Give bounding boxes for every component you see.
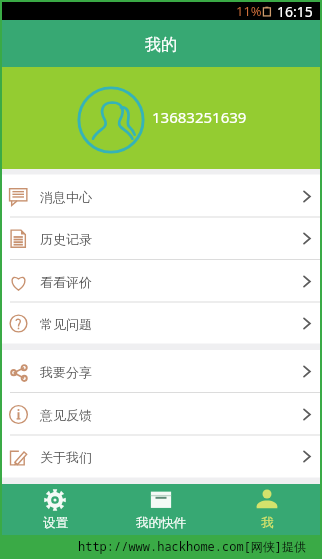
button[interactable]: 关于我们 (2, 435, 320, 478)
button[interactable]: 设置 (2, 484, 108, 535)
button[interactable]: 我的快件 (108, 484, 214, 535)
staticText: 意见反馈 (40, 407, 92, 423)
button[interactable]: 常见问题 (2, 302, 320, 345)
staticText: 13683251639 (152, 107, 247, 127)
button[interactable]: 我 (214, 484, 320, 535)
staticText: 消息中心 (40, 189, 92, 205)
staticText: 关于我们 (40, 449, 92, 465)
staticText: 常见问题 (40, 316, 92, 332)
button[interactable]: 看看评价 (2, 260, 320, 303)
staticText: 历史记录 (40, 231, 92, 247)
button[interactable]: 我要分享 (2, 350, 320, 393)
staticText: 我的 (145, 35, 177, 55)
staticText: http://www.hackhome.com[网侠]提供 (78, 538, 307, 554)
staticText: 16:15 (277, 2, 313, 20)
staticText: 11% (236, 2, 262, 20)
staticText: 我的快件 (136, 515, 186, 531)
staticText: 我 (261, 515, 274, 531)
staticText: 设置 (43, 515, 68, 531)
staticText: 看看评价 (40, 274, 92, 290)
button[interactable]: 历史记录 (2, 217, 320, 260)
button[interactable]: 意见反馈 (2, 393, 320, 436)
button[interactable]: 消息中心 (2, 175, 320, 218)
staticText: 我要分享 (40, 364, 92, 380)
